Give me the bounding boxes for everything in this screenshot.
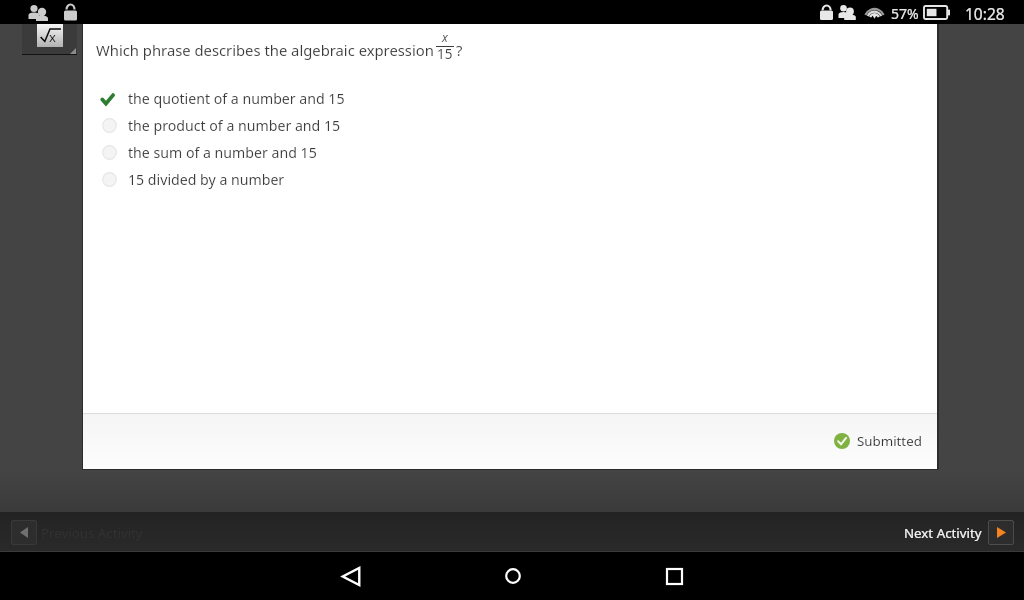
button[interactable]: Recent apps: [632, 552, 716, 600]
button[interactable]: Math keyboard: [22, 24, 77, 55]
staticText: Submitted: [857, 432, 922, 450]
staticText: 57%: [891, 4, 919, 23]
button[interactable]: Next Activity: [904, 520, 1014, 545]
button[interactable]: the sum of a number and 15: [83, 139, 937, 166]
button[interactable]: 15 divided by a number: [83, 166, 937, 193]
staticText: the quotient of a number and 15: [128, 89, 345, 108]
button[interactable]: Home: [471, 552, 555, 600]
staticText: 15: [437, 45, 453, 63]
button[interactable]: Previous Activity: [11, 520, 143, 545]
staticText: Previous Activity: [41, 524, 143, 542]
staticText: ?: [456, 40, 463, 60]
staticText: Next Activity: [904, 524, 982, 542]
staticText: x: [49, 28, 56, 46]
staticText: 15 divided by a number: [128, 170, 285, 189]
staticText: x: [442, 29, 448, 45]
button[interactable]: the product of a number and 15: [83, 112, 937, 139]
button[interactable]: the quotient of a number and 15: [83, 85, 937, 112]
button[interactable]: Back: [309, 552, 393, 600]
staticText: the product of a number and 15: [128, 116, 341, 135]
button[interactable]: Submitted: [834, 432, 922, 450]
staticText: the sum of a number and 15: [128, 143, 317, 162]
staticText: 10:28: [965, 3, 1005, 24]
staticText: Which phrase describes the algebraic exp…: [96, 40, 434, 60]
